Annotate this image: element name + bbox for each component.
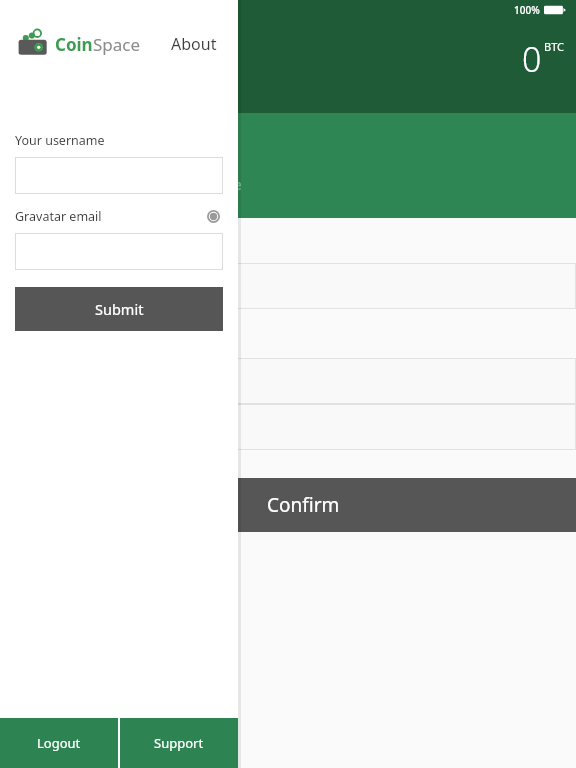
button[interactable] [30, 263, 576, 309]
button[interactable]: Close [18, 40, 58, 80]
staticText: 0 [522, 36, 542, 82]
staticText: About [171, 33, 217, 55]
staticText: 100% [514, 3, 540, 17]
staticText: Amount [30, 330, 84, 349]
staticText: BTC [544, 39, 564, 54]
button[interactable]: Receive [145, 113, 290, 218]
staticText: Support [154, 734, 204, 752]
button[interactable]: Confirm [30, 478, 576, 532]
staticText: Gravatar email [15, 208, 102, 225]
button[interactable]: Support [120, 718, 238, 768]
button[interactable]: Send [0, 113, 145, 218]
staticText: Your username [15, 132, 105, 149]
staticText: Send [57, 177, 89, 195]
button[interactable]: Submit [15, 287, 223, 331]
staticText: Submit [95, 299, 144, 319]
button[interactable] [30, 358, 576, 404]
button[interactable] [15, 233, 223, 270]
staticText: Space [93, 33, 141, 56]
button[interactable]: Help [203, 206, 223, 226]
staticText: Coin [55, 33, 93, 56]
staticText: Confirm [267, 492, 340, 518]
staticText: Receive [193, 176, 242, 194]
button[interactable] [30, 404, 576, 450]
button[interactable]: About [165, 27, 223, 61]
staticText: Logout [37, 734, 81, 752]
button[interactable]: Logout [0, 718, 118, 768]
button[interactable] [15, 157, 223, 194]
